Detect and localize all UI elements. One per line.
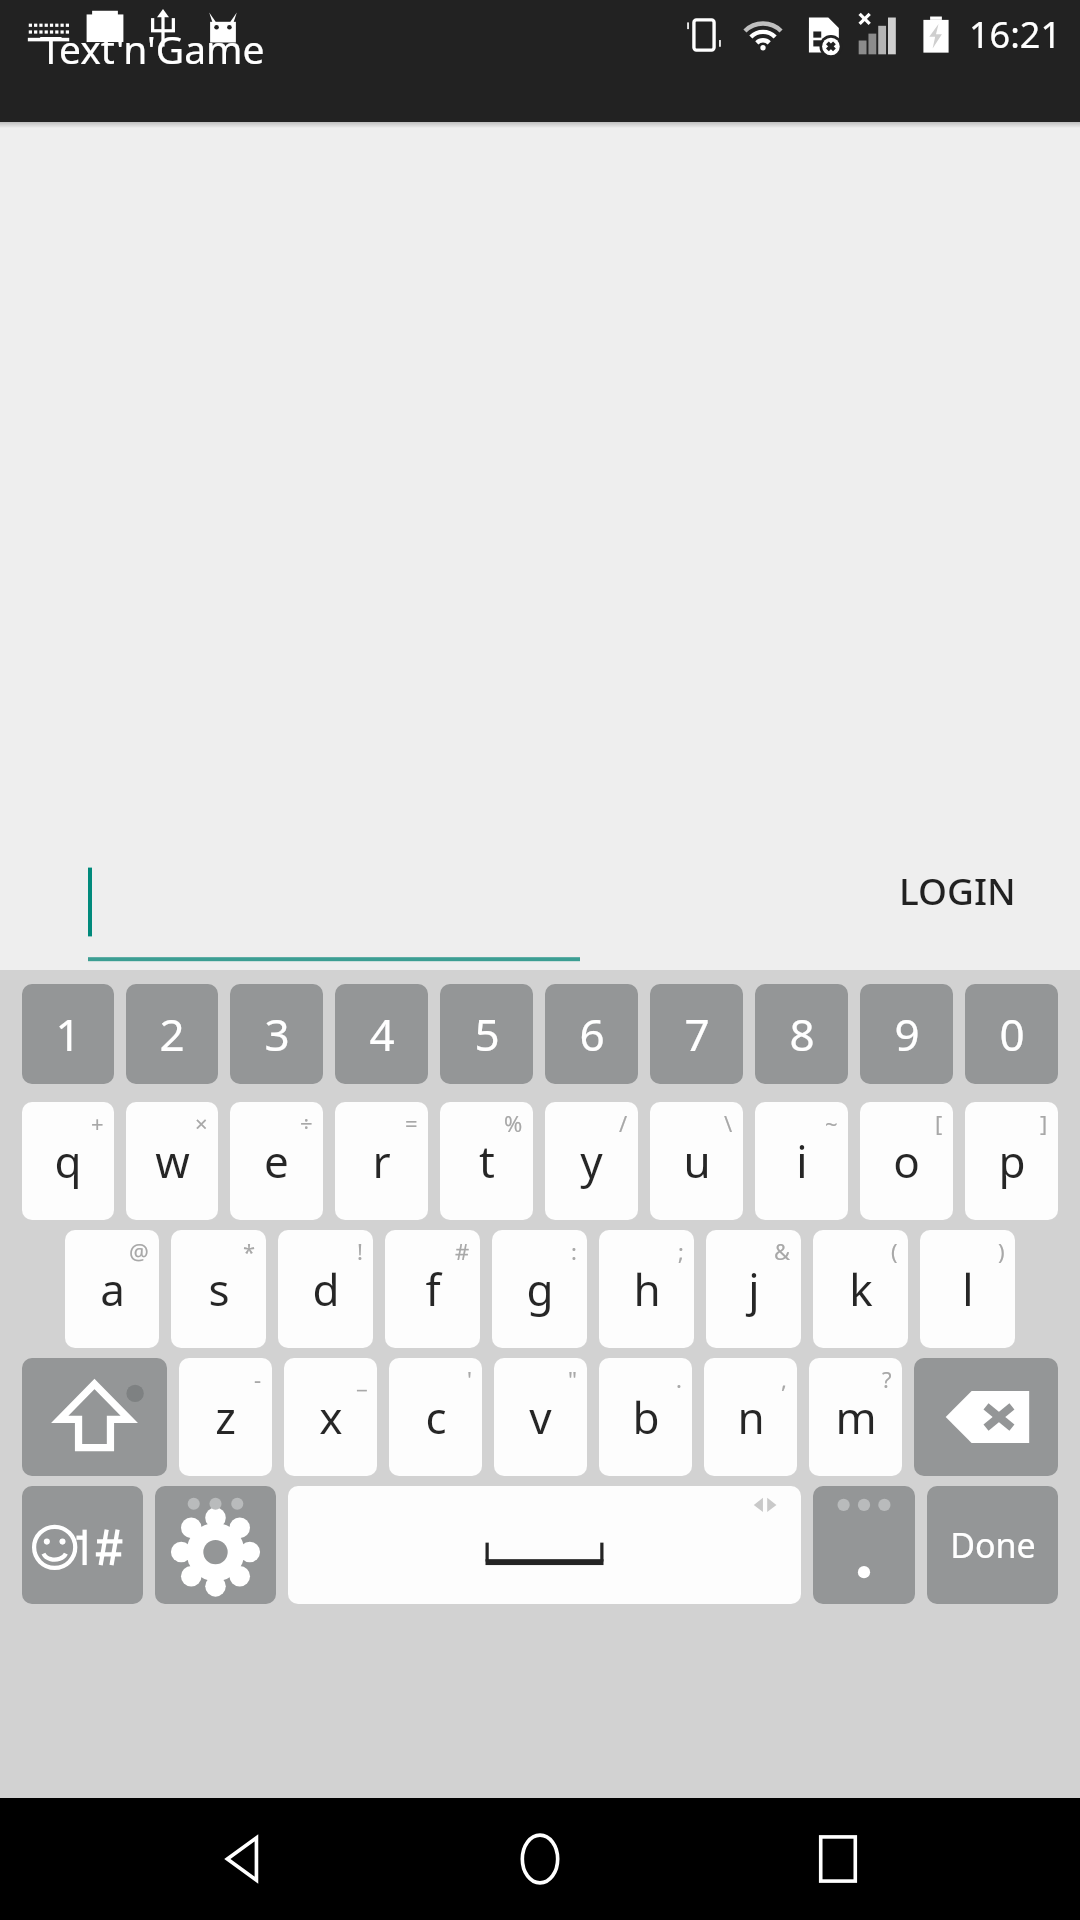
button[interactable]: 4 — [335, 984, 428, 1084]
staticText: 16:21 — [969, 10, 1062, 59]
staticText: r — [372, 1131, 391, 1191]
staticText: p — [998, 1131, 1026, 1191]
button[interactable]: . — [599, 1358, 692, 1476]
staticText: % — [504, 1108, 523, 1138]
button[interactable]: : — [492, 1230, 587, 1348]
staticText: 3 — [264, 1004, 290, 1064]
button[interactable]: Period — [813, 1486, 915, 1604]
button[interactable]: + — [22, 1102, 114, 1220]
button[interactable]: LOGIN — [883, 853, 1032, 927]
staticText: 2 — [159, 1004, 185, 1064]
button[interactable]: ; — [599, 1230, 694, 1348]
staticText: u — [683, 1131, 711, 1191]
staticText: i — [796, 1131, 808, 1191]
button[interactable]: / — [545, 1102, 638, 1220]
button[interactable]: Emoji and symbols — [22, 1486, 143, 1604]
button[interactable]: - — [179, 1358, 272, 1476]
button[interactable]: _ — [284, 1358, 377, 1476]
staticText: 5 — [474, 1004, 500, 1064]
button[interactable]: × — [126, 1102, 218, 1220]
staticText: @ — [129, 1236, 149, 1266]
button[interactable]: Keyboard settings — [155, 1486, 276, 1604]
staticText: z — [215, 1387, 236, 1447]
button[interactable]: ? — [809, 1358, 902, 1476]
button[interactable]: Backspace — [914, 1358, 1058, 1476]
staticText: - — [254, 1364, 262, 1394]
staticText: j — [748, 1259, 760, 1319]
staticText: s — [208, 1259, 230, 1319]
button[interactable]: 2 — [126, 984, 218, 1084]
button[interactable]: Home — [485, 1804, 595, 1914]
staticText: 0 — [999, 1004, 1025, 1064]
button[interactable]: 0 — [965, 984, 1058, 1084]
button[interactable]: 7 — [650, 984, 743, 1084]
button[interactable]: @ — [65, 1230, 159, 1348]
staticText: # — [455, 1236, 470, 1266]
staticText: ) — [998, 1236, 1005, 1266]
button[interactable]: [ — [860, 1102, 953, 1220]
button[interactable]: Back — [188, 1804, 298, 1914]
button[interactable]: 8 — [755, 984, 848, 1084]
staticText: m — [835, 1387, 877, 1447]
staticText: / — [619, 1108, 628, 1138]
staticText: n — [737, 1387, 765, 1447]
staticText: ( — [891, 1236, 898, 1266]
staticText: 8 — [789, 1004, 815, 1064]
staticText: * — [243, 1236, 256, 1266]
staticText: ] — [1040, 1108, 1048, 1138]
button[interactable]: ) — [920, 1230, 1015, 1348]
button[interactable]: % — [440, 1102, 533, 1220]
button[interactable]: " — [494, 1358, 587, 1476]
staticText: ! — [357, 1236, 363, 1266]
staticText: & — [774, 1236, 791, 1266]
button[interactable]: = — [335, 1102, 428, 1220]
staticText: 7 — [684, 1004, 710, 1064]
button[interactable]: \ — [650, 1102, 743, 1220]
button[interactable]: ! — [278, 1230, 373, 1348]
staticText: + — [91, 1108, 104, 1138]
button[interactable]: 6 — [545, 984, 638, 1084]
staticText: t — [479, 1131, 495, 1191]
staticText: l — [962, 1259, 974, 1319]
staticText: ~ — [825, 1108, 838, 1138]
button[interactable]: ] — [965, 1102, 1058, 1220]
staticText: 9 — [894, 1004, 920, 1064]
button[interactable]: # — [385, 1230, 480, 1348]
staticText: [ — [935, 1108, 943, 1138]
button[interactable] — [88, 810, 580, 970]
staticText: k — [849, 1259, 873, 1319]
button[interactable]: ( — [813, 1230, 908, 1348]
staticText: . — [676, 1364, 682, 1394]
staticText: f — [425, 1259, 441, 1319]
button[interactable]: Done — [927, 1486, 1058, 1604]
staticText: Text'n'Game — [40, 22, 265, 75]
button[interactable]: & — [706, 1230, 801, 1348]
staticText: h — [633, 1259, 661, 1319]
staticText: × — [195, 1108, 208, 1138]
button[interactable]: Recent apps — [783, 1804, 893, 1914]
staticText: : — [571, 1236, 577, 1266]
staticText: , — [781, 1364, 787, 1394]
staticText: d — [312, 1259, 340, 1319]
button[interactable]: ~ — [755, 1102, 848, 1220]
button[interactable]: ' — [389, 1358, 482, 1476]
staticText: \ — [724, 1108, 733, 1138]
staticText: o — [893, 1131, 920, 1191]
staticText: ? — [882, 1364, 892, 1394]
staticText: = — [405, 1108, 418, 1138]
staticText: w — [155, 1131, 190, 1191]
staticText: LOGIN — [899, 865, 1016, 915]
staticText: a — [100, 1259, 125, 1319]
button[interactable]: , — [704, 1358, 797, 1476]
button[interactable]: 5 — [440, 984, 533, 1084]
button[interactable]: 9 — [860, 984, 953, 1084]
staticText: Done — [950, 1522, 1036, 1568]
button[interactable]: ÷ — [230, 1102, 323, 1220]
staticText: b — [632, 1387, 660, 1447]
button[interactable]: 3 — [230, 984, 323, 1084]
button[interactable]: 1 — [22, 984, 114, 1084]
button[interactable]: Shift — [22, 1358, 167, 1476]
staticText: ' — [467, 1364, 472, 1394]
button[interactable]: Space — [288, 1486, 801, 1604]
button[interactable]: * — [171, 1230, 266, 1348]
